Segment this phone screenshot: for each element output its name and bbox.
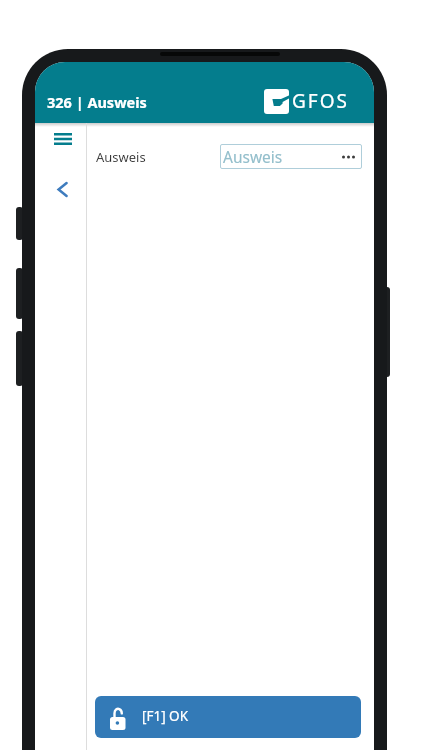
staticText: Ausweis xyxy=(96,148,146,166)
button[interactable]: Ausweis xyxy=(220,144,362,169)
button[interactable] xyxy=(48,126,78,151)
staticText: Ausweis xyxy=(223,146,283,167)
button[interactable]: [F1] OK xyxy=(95,696,361,738)
button[interactable] xyxy=(49,174,75,204)
staticText: 326 | Ausweis xyxy=(47,92,147,112)
staticText: [F1] OK xyxy=(142,707,189,725)
staticText: GFOS xyxy=(292,88,349,114)
